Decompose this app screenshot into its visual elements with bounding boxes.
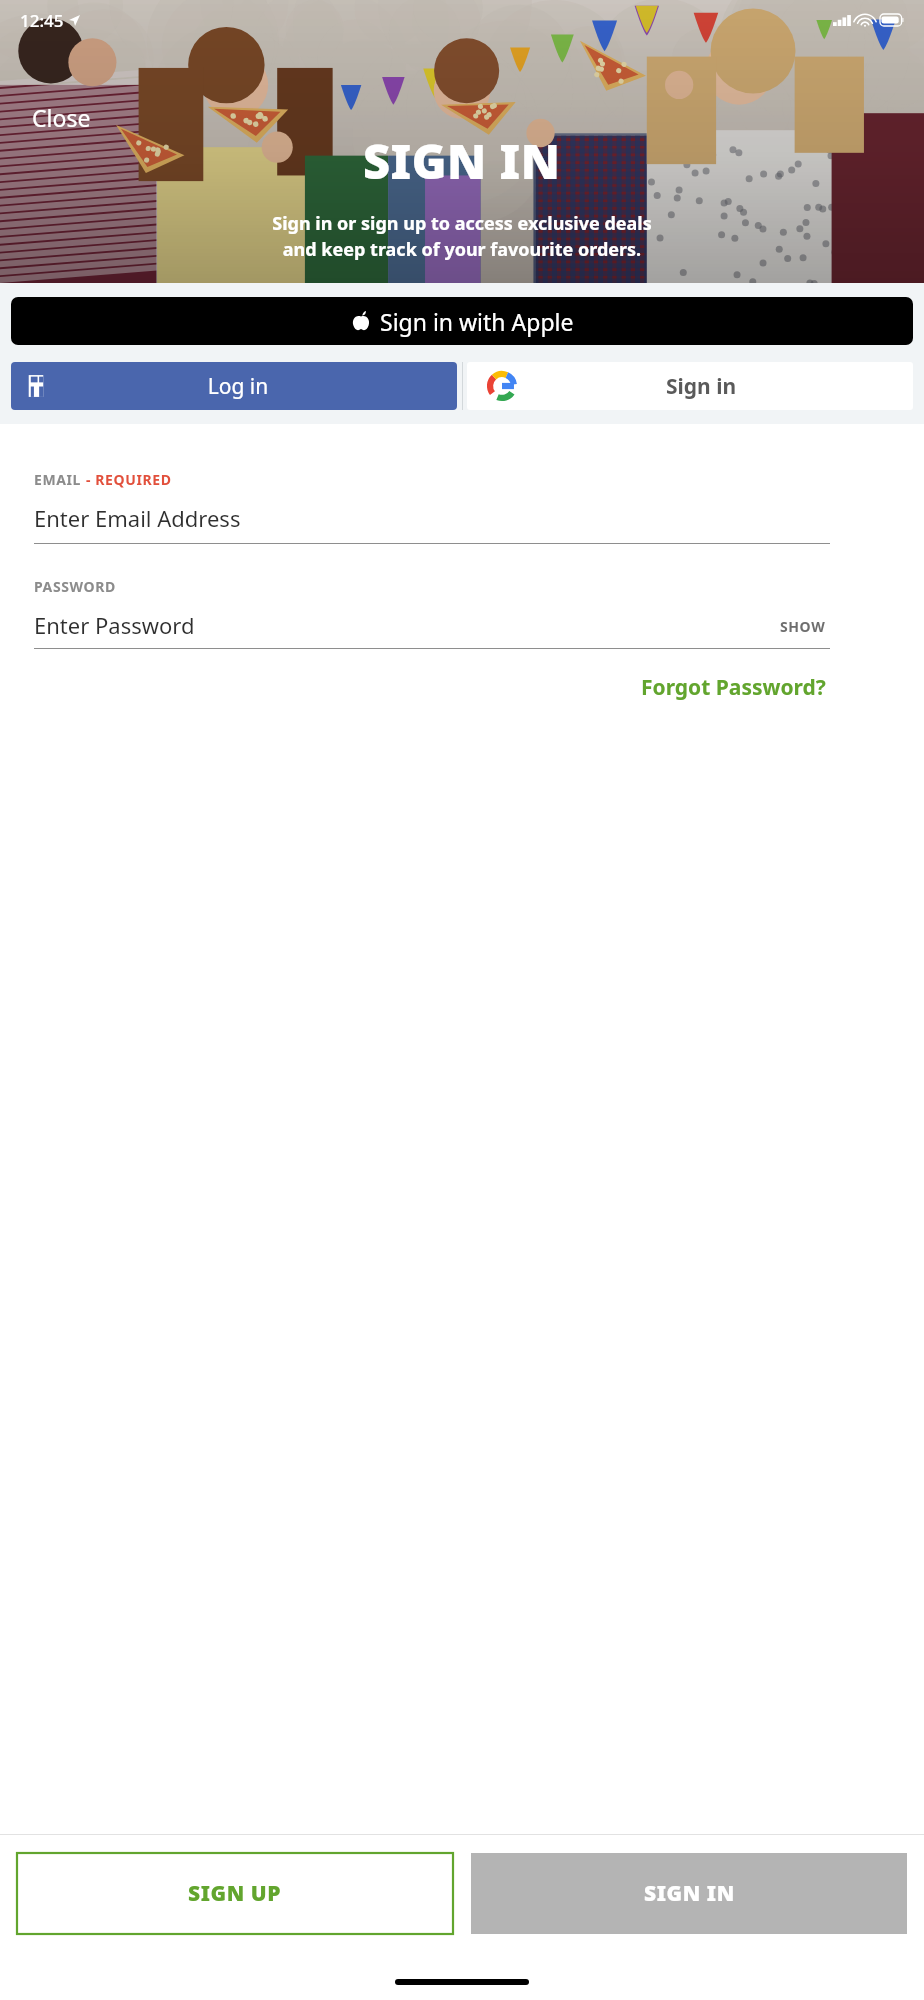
staticText: Sign in with Apple [380,306,574,337]
staticText: Log in [49,372,427,401]
staticText: Sign in or sign up to access exclusive d… [272,211,652,261]
staticText: SIGN IN [363,129,561,193]
staticText: PASSWORD [34,577,116,596]
button[interactable]: Forgot Password? [637,667,830,708]
staticText: Enter Password [34,610,195,640]
staticText: SIGN IN [644,1879,735,1908]
button[interactable]: Sign in with Apple [11,297,913,345]
staticText: SHOW [780,617,826,636]
staticText: - REQUIRED [86,470,172,489]
button[interactable]: Enter Password [34,610,776,640]
button[interactable]: Sign in [467,362,913,410]
staticText: 12:45 [20,9,64,32]
staticText: Sign in [515,372,887,401]
staticText: EMAIL [34,470,86,489]
button[interactable]: SHOW [776,613,830,640]
staticText: Enter Email Address [34,503,241,533]
button[interactable]: Close [20,96,103,139]
button[interactable]: SIGN IN [471,1853,907,1934]
button[interactable]: Log in [11,362,457,410]
button[interactable]: Enter Email Address [34,503,890,533]
button[interactable]: SIGN UP [17,1853,453,1934]
staticText: SIGN UP [188,1879,282,1908]
staticText: Forgot Password? [641,673,826,702]
staticText: Close [32,102,91,133]
